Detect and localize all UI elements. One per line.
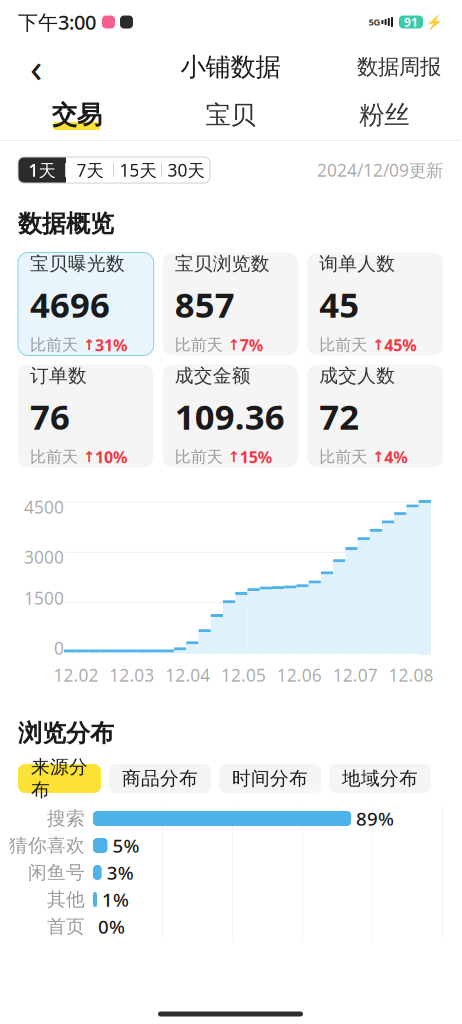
staticText: 数据周报 (357, 54, 441, 80)
staticText: 4696 (30, 281, 110, 327)
staticText: 2024/12/09更新 (317, 158, 443, 181)
staticText: 粉丝 (359, 99, 409, 130)
staticText: 109.36 (175, 393, 285, 439)
staticText: 3000 (24, 545, 64, 568)
button[interactable]: 时间分布 (219, 764, 321, 793)
staticText: 12.04 (165, 663, 210, 686)
staticText: 宝贝曝光数 (30, 252, 125, 275)
staticText: 12.06 (277, 663, 322, 686)
staticText: 1天 (28, 158, 55, 181)
staticText: 4500 (24, 495, 64, 518)
staticText: 12.02 (53, 663, 98, 686)
staticText: 1500 (24, 586, 64, 609)
button[interactable]: 成交金额 (163, 364, 298, 467)
staticText: 宝贝 (205, 99, 255, 130)
staticText: ↑ (228, 449, 240, 465)
staticText: 12.08 (389, 663, 434, 686)
staticText: 5% (112, 833, 139, 858)
staticText: 来源分布 (31, 755, 88, 801)
staticText: 时间分布 (232, 767, 308, 790)
staticText: 闲鱼号 (28, 861, 85, 884)
staticText: 76 (30, 393, 70, 439)
staticText: ↑ (228, 337, 240, 353)
button[interactable]: 地域分布 (329, 764, 431, 793)
button[interactable]: 商品分布 (109, 764, 211, 793)
staticText: 询单人数 (319, 252, 395, 275)
staticText: 7天 (76, 158, 103, 181)
staticText: 7% (240, 334, 263, 355)
staticText: 72 (319, 393, 359, 439)
staticText: 12.05 (221, 663, 266, 686)
staticText: 0 (54, 636, 64, 659)
staticText: 12.03 (109, 663, 154, 686)
button[interactable]: 宝贝浏览数 (163, 252, 298, 355)
button[interactable]: 宝贝曝光数 (18, 252, 154, 355)
button[interactable]: 宝贝 (154, 90, 307, 140)
button[interactable]: 30天 (162, 157, 210, 183)
staticText: 比前天 (175, 447, 228, 467)
staticText: 商品分布 (122, 767, 198, 790)
staticText: 首页 (47, 915, 85, 938)
staticText: 数据概览 (18, 209, 114, 238)
staticText: 成交人数 (319, 364, 395, 387)
staticText: 猜你喜欢 (9, 834, 85, 857)
button[interactable]: 来源分布 (18, 764, 101, 793)
staticText: 其他 (47, 888, 85, 911)
staticText: 下午3:00 (18, 9, 96, 35)
staticText: 比前天 (319, 447, 372, 467)
staticText: ↑ (372, 449, 384, 465)
staticText: ‹ (30, 40, 42, 93)
staticText: 89% (356, 806, 394, 831)
staticText: 浏览分布 (18, 718, 114, 748)
staticText: 交易 (52, 99, 102, 130)
staticText: ↑ (372, 337, 384, 353)
button[interactable]: 7天 (66, 157, 114, 183)
staticText: 15% (240, 446, 272, 467)
button[interactable]: 询单人数 (307, 252, 443, 355)
button[interactable]: 成交人数 (307, 364, 443, 467)
staticText: 3% (107, 860, 134, 885)
button[interactable]: 交易 (0, 90, 154, 140)
staticText: 宝贝浏览数 (175, 252, 270, 275)
staticText: 10% (95, 446, 127, 467)
staticText: 比前天 (175, 335, 228, 355)
staticText: 0% (98, 914, 125, 939)
staticText: 45% (384, 334, 416, 355)
button[interactable]: 数据周报 (351, 45, 447, 89)
button[interactable]: Back (14, 45, 58, 89)
staticText: 比前天 (30, 447, 83, 467)
button[interactable]: 粉丝 (307, 90, 461, 140)
staticText: 91 (404, 14, 418, 30)
staticText: 比前天 (319, 335, 372, 355)
staticText: 857 (175, 281, 235, 327)
staticText: 45 (319, 281, 359, 327)
button[interactable]: 订单数 (18, 364, 154, 467)
staticText: 31% (95, 334, 127, 355)
staticText: 12.07 (333, 663, 378, 686)
staticText: 30天 (167, 158, 204, 181)
staticText: 成交金额 (175, 364, 251, 387)
staticText: 1% (102, 887, 129, 912)
staticText: 4% (384, 446, 407, 467)
staticText: 订单数 (30, 364, 87, 387)
staticText: 5G (368, 16, 380, 28)
staticText: ⚡ (426, 14, 443, 30)
staticText: ↑ (83, 337, 95, 353)
staticText: 15天 (119, 158, 156, 181)
staticText: 比前天 (30, 335, 83, 355)
button[interactable]: 15天 (114, 157, 162, 183)
staticText: 搜索 (47, 807, 85, 830)
staticText: ↑ (83, 449, 95, 465)
staticText: 地域分布 (342, 767, 418, 790)
button[interactable]: 1天 (18, 157, 66, 183)
staticText: 小铺数据 (180, 51, 280, 82)
